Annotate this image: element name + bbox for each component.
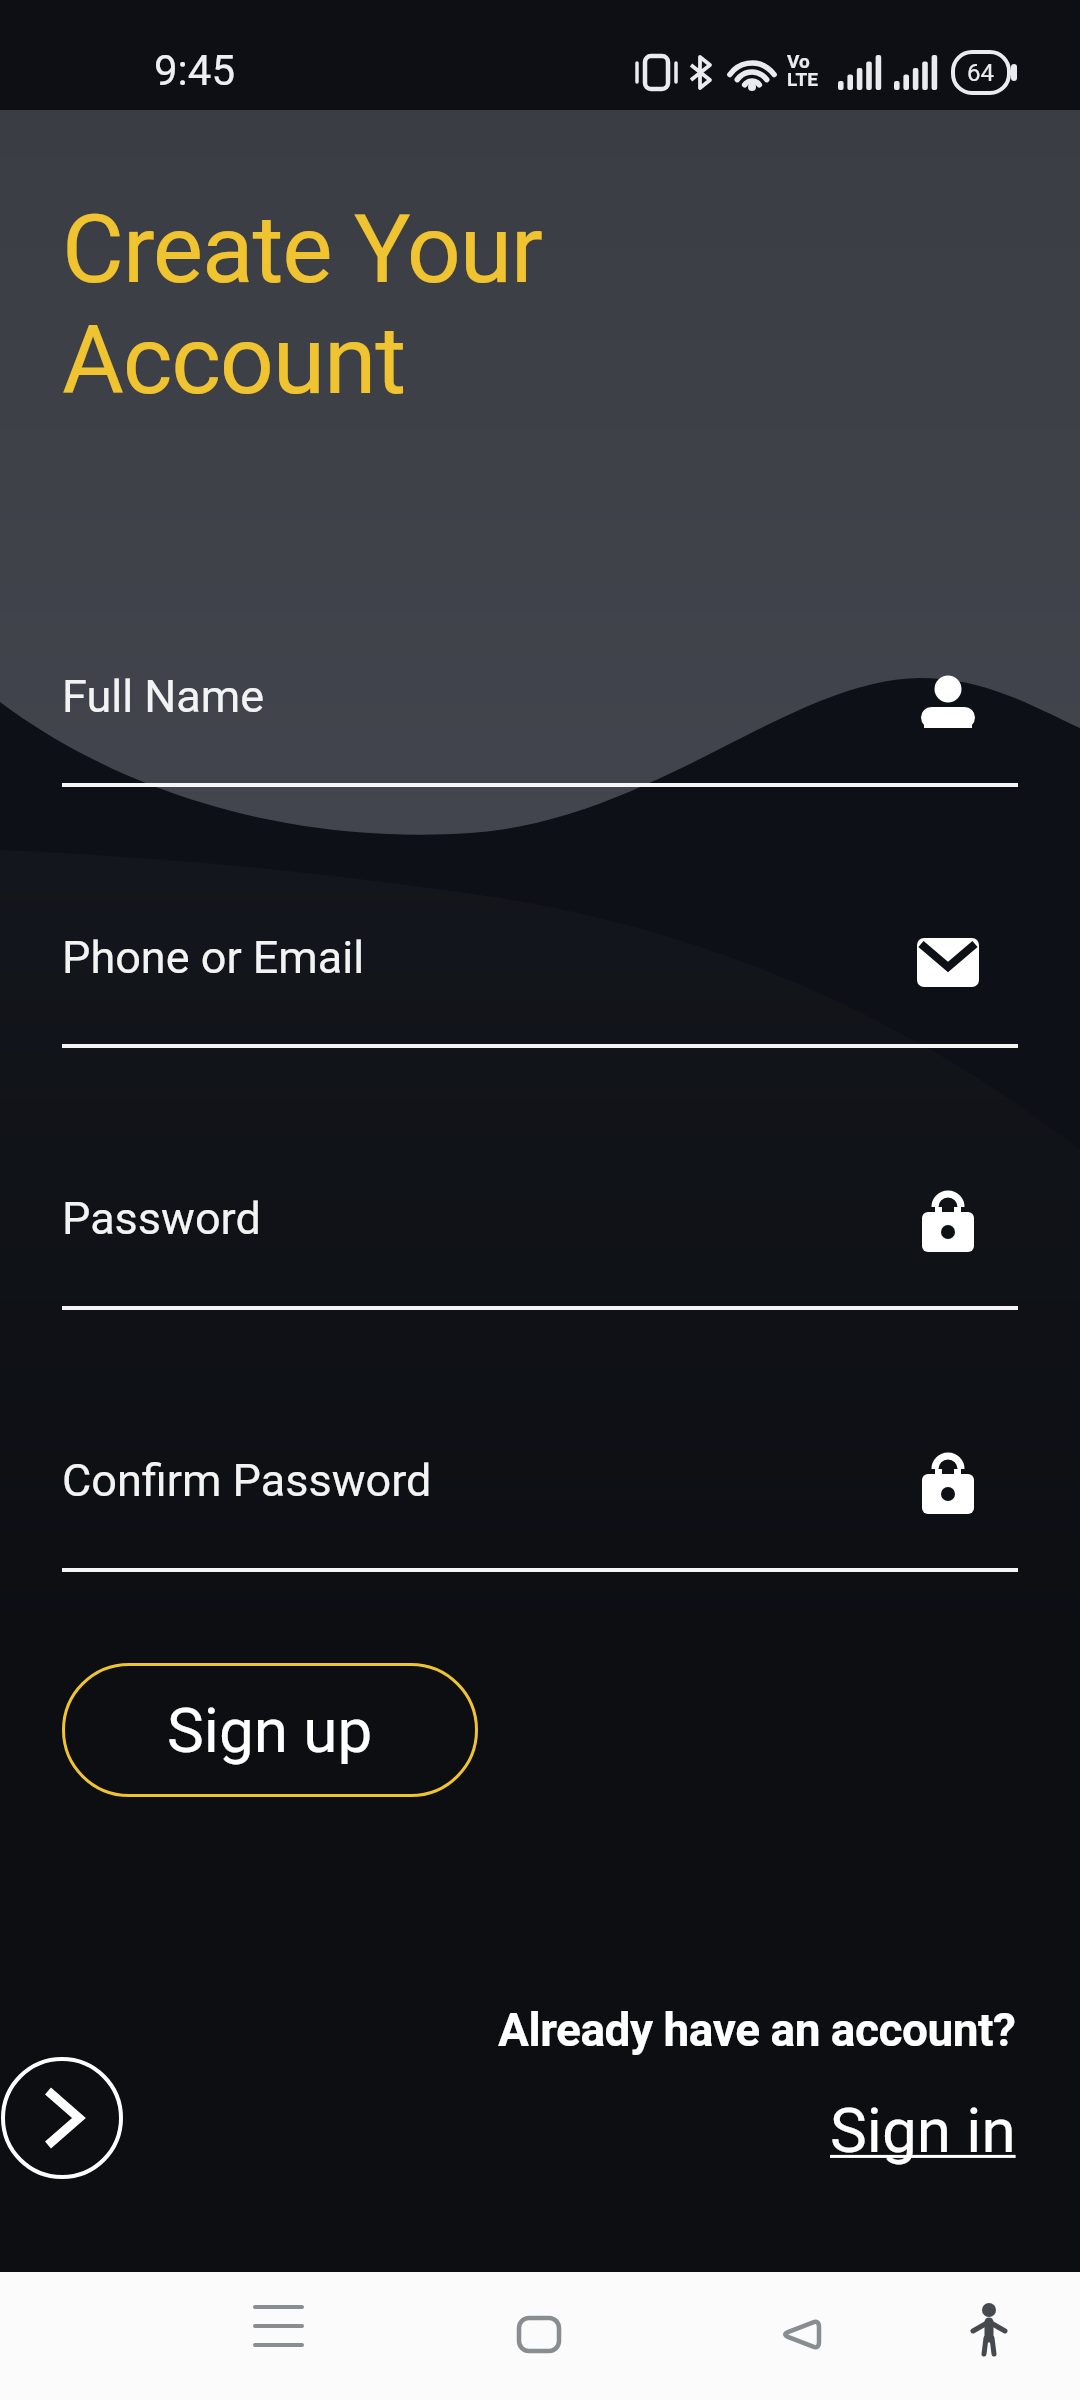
button[interactable] xyxy=(62,650,1018,787)
button[interactable]: Sign in xyxy=(830,2094,1016,2167)
button[interactable] xyxy=(230,2278,326,2374)
staticText: Full Name xyxy=(62,670,265,723)
button[interactable] xyxy=(941,2278,1037,2374)
button[interactable] xyxy=(62,1172,1018,1310)
staticText: 64 xyxy=(967,59,994,87)
staticText: Phone or Email xyxy=(62,931,365,984)
staticText: Create Your Account xyxy=(62,194,542,416)
staticText: Already have an account? xyxy=(498,2003,1016,2057)
staticText: Sign up xyxy=(167,1694,373,1767)
staticText: Vo xyxy=(787,50,810,72)
staticText: Confirm Password xyxy=(62,1454,432,1507)
button[interactable]: Sign up xyxy=(62,1663,478,1797)
button[interactable] xyxy=(62,911,1018,1048)
button[interactable] xyxy=(491,2278,587,2374)
button[interactable] xyxy=(0,2056,125,2181)
staticText: Password xyxy=(62,1192,261,1245)
staticText: 9:45 xyxy=(154,46,235,95)
button[interactable] xyxy=(62,1434,1018,1572)
button[interactable] xyxy=(752,2278,848,2374)
staticText: LTE xyxy=(787,68,818,90)
